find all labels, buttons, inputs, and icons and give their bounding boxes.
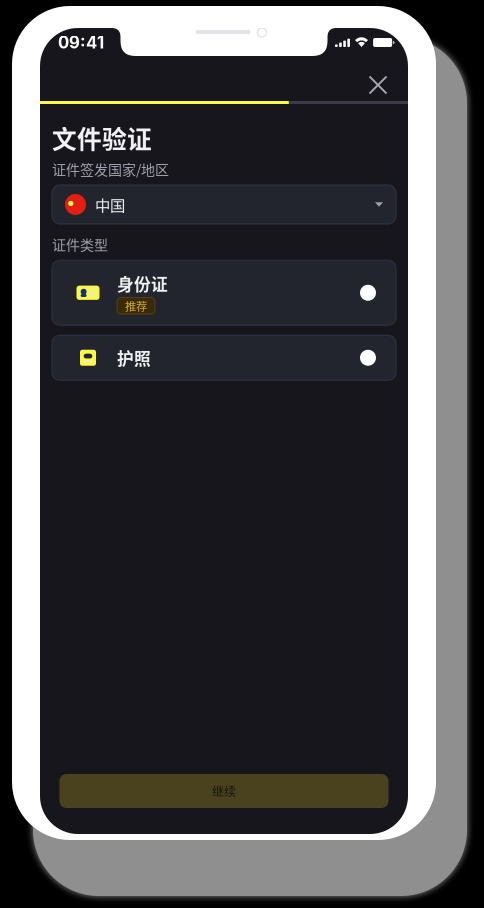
staticText: 护照 (117, 346, 151, 370)
staticText: 证件类型 (52, 234, 108, 254)
button[interactable]: Close (356, 63, 400, 107)
staticText: 推荐 (125, 298, 147, 314)
staticText: 继续 (212, 782, 236, 800)
staticText: 身份证 (117, 271, 168, 296)
button[interactable]: 中国 (52, 185, 396, 224)
button[interactable]: 身份证 (52, 260, 396, 325)
staticText: 09:41 (58, 32, 104, 53)
button[interactable]: 护照 (52, 335, 396, 380)
button[interactable]: 继续 (59, 774, 388, 808)
staticText: 中国 (95, 193, 125, 216)
staticText: 证件签发国家/地区 (52, 159, 169, 179)
staticText: 文件验证 (52, 120, 152, 156)
